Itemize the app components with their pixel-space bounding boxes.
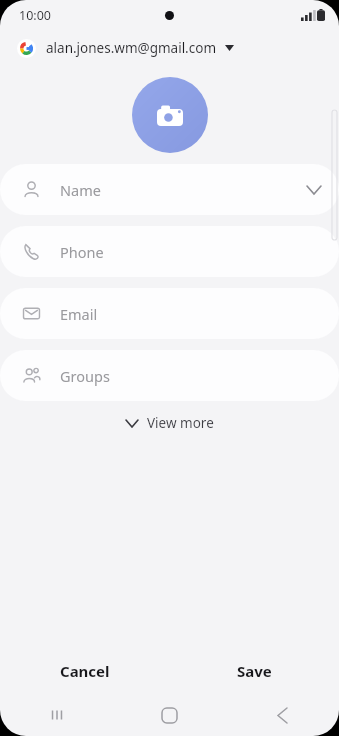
staticText: Cancel [60, 661, 110, 681]
staticText: Name [60, 180, 307, 200]
button[interactable]: Recents [0, 694, 113, 736]
staticText: View more [147, 414, 214, 432]
staticText: 10:00 [19, 7, 51, 24]
button[interactable]: Phone [0, 226, 339, 277]
staticText: Email [60, 304, 321, 324]
staticText: Groups [60, 366, 321, 386]
staticText: Phone [60, 242, 321, 262]
button[interactable]: Home [113, 694, 226, 736]
staticText: alan.jones.wm@gmail.com [46, 39, 217, 57]
button[interactable]: View more [114, 408, 226, 438]
button[interactable]: Email [0, 288, 339, 339]
button[interactable]: Add photo [132, 77, 208, 153]
staticText: Save [237, 661, 272, 681]
button[interactable]: Groups [0, 350, 339, 401]
button[interactable]: Save [169, 648, 339, 694]
button[interactable]: alan.jones.wm@gmail.com [0, 30, 339, 66]
button[interactable]: Cancel [0, 648, 169, 694]
button[interactable]: Name [0, 164, 339, 215]
button[interactable]: Back [226, 694, 339, 736]
